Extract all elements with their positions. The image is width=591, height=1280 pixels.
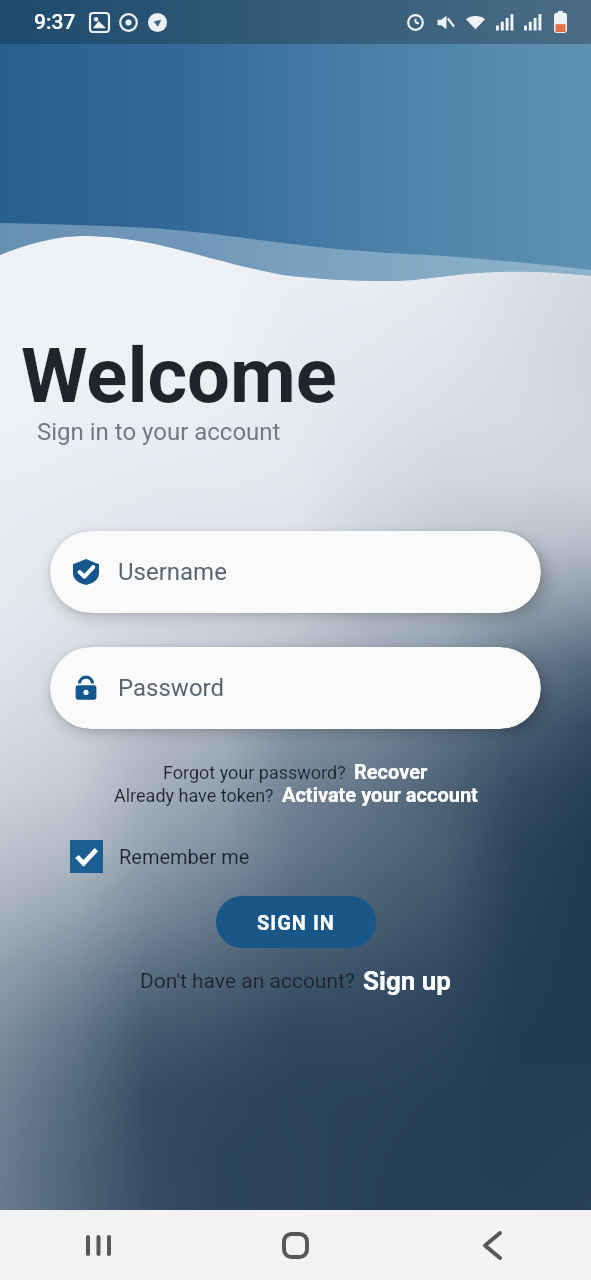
button[interactable]: Recover <box>354 760 428 783</box>
staticText: Don't have an account? <box>140 969 355 994</box>
button[interactable]: Password <box>50 647 541 729</box>
staticText: Forgot your password? <box>163 762 346 783</box>
button[interactable]: Back <box>394 1210 591 1280</box>
staticText: SIGN IN <box>257 911 335 934</box>
button[interactable]: Username <box>50 531 541 613</box>
button[interactable]: Activate your account <box>282 783 478 806</box>
button[interactable]: SIGN IN <box>216 896 376 948</box>
staticText: Welcome <box>21 331 337 420</box>
staticText: Recover <box>354 760 428 783</box>
staticText: Password <box>118 674 225 702</box>
staticText: Username <box>118 558 227 586</box>
staticText: Remember me <box>119 845 250 868</box>
staticText: Activate your account <box>282 783 478 806</box>
staticText: Sign up <box>363 966 451 996</box>
button[interactable]: Recents <box>0 1210 197 1280</box>
staticText: Already have token? <box>114 785 274 806</box>
staticText: Sign in to your account <box>37 418 281 446</box>
button[interactable]: Remember me <box>70 840 250 873</box>
button[interactable]: Sign up <box>363 966 451 996</box>
button[interactable]: Home <box>197 1210 394 1280</box>
staticText: 9:37 <box>34 10 76 35</box>
